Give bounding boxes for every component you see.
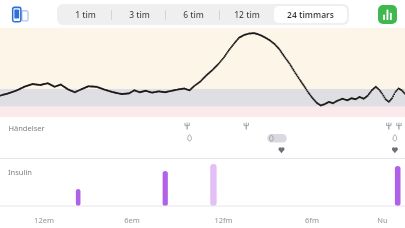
- button[interactable]: Enheter: [8, 2, 32, 26]
- staticText: 24 timmars: [287, 9, 334, 21]
- button[interactable]: 6 tim: [166, 6, 220, 23]
- staticText: 1 tim: [75, 9, 96, 21]
- staticText: 6fm: [305, 215, 319, 225]
- button[interactable]: 3 tim: [112, 6, 166, 23]
- button[interactable]: 12 tim: [220, 6, 274, 23]
- staticText: 12fm: [214, 215, 233, 225]
- staticText: Händelser: [8, 123, 45, 133]
- staticText: 12 tim: [234, 9, 260, 21]
- staticText: 6 tim: [183, 9, 204, 21]
- staticText: 6em: [124, 215, 140, 225]
- staticText: Insulin: [8, 167, 32, 177]
- button[interactable]: 24 timmars: [274, 6, 347, 23]
- button[interactable]: Statistik: [378, 5, 397, 24]
- staticText: 12em: [34, 215, 54, 225]
- button[interactable]: 1 tim: [59, 6, 112, 23]
- staticText: 3 tim: [129, 9, 150, 21]
- staticText: Nu: [377, 215, 388, 225]
